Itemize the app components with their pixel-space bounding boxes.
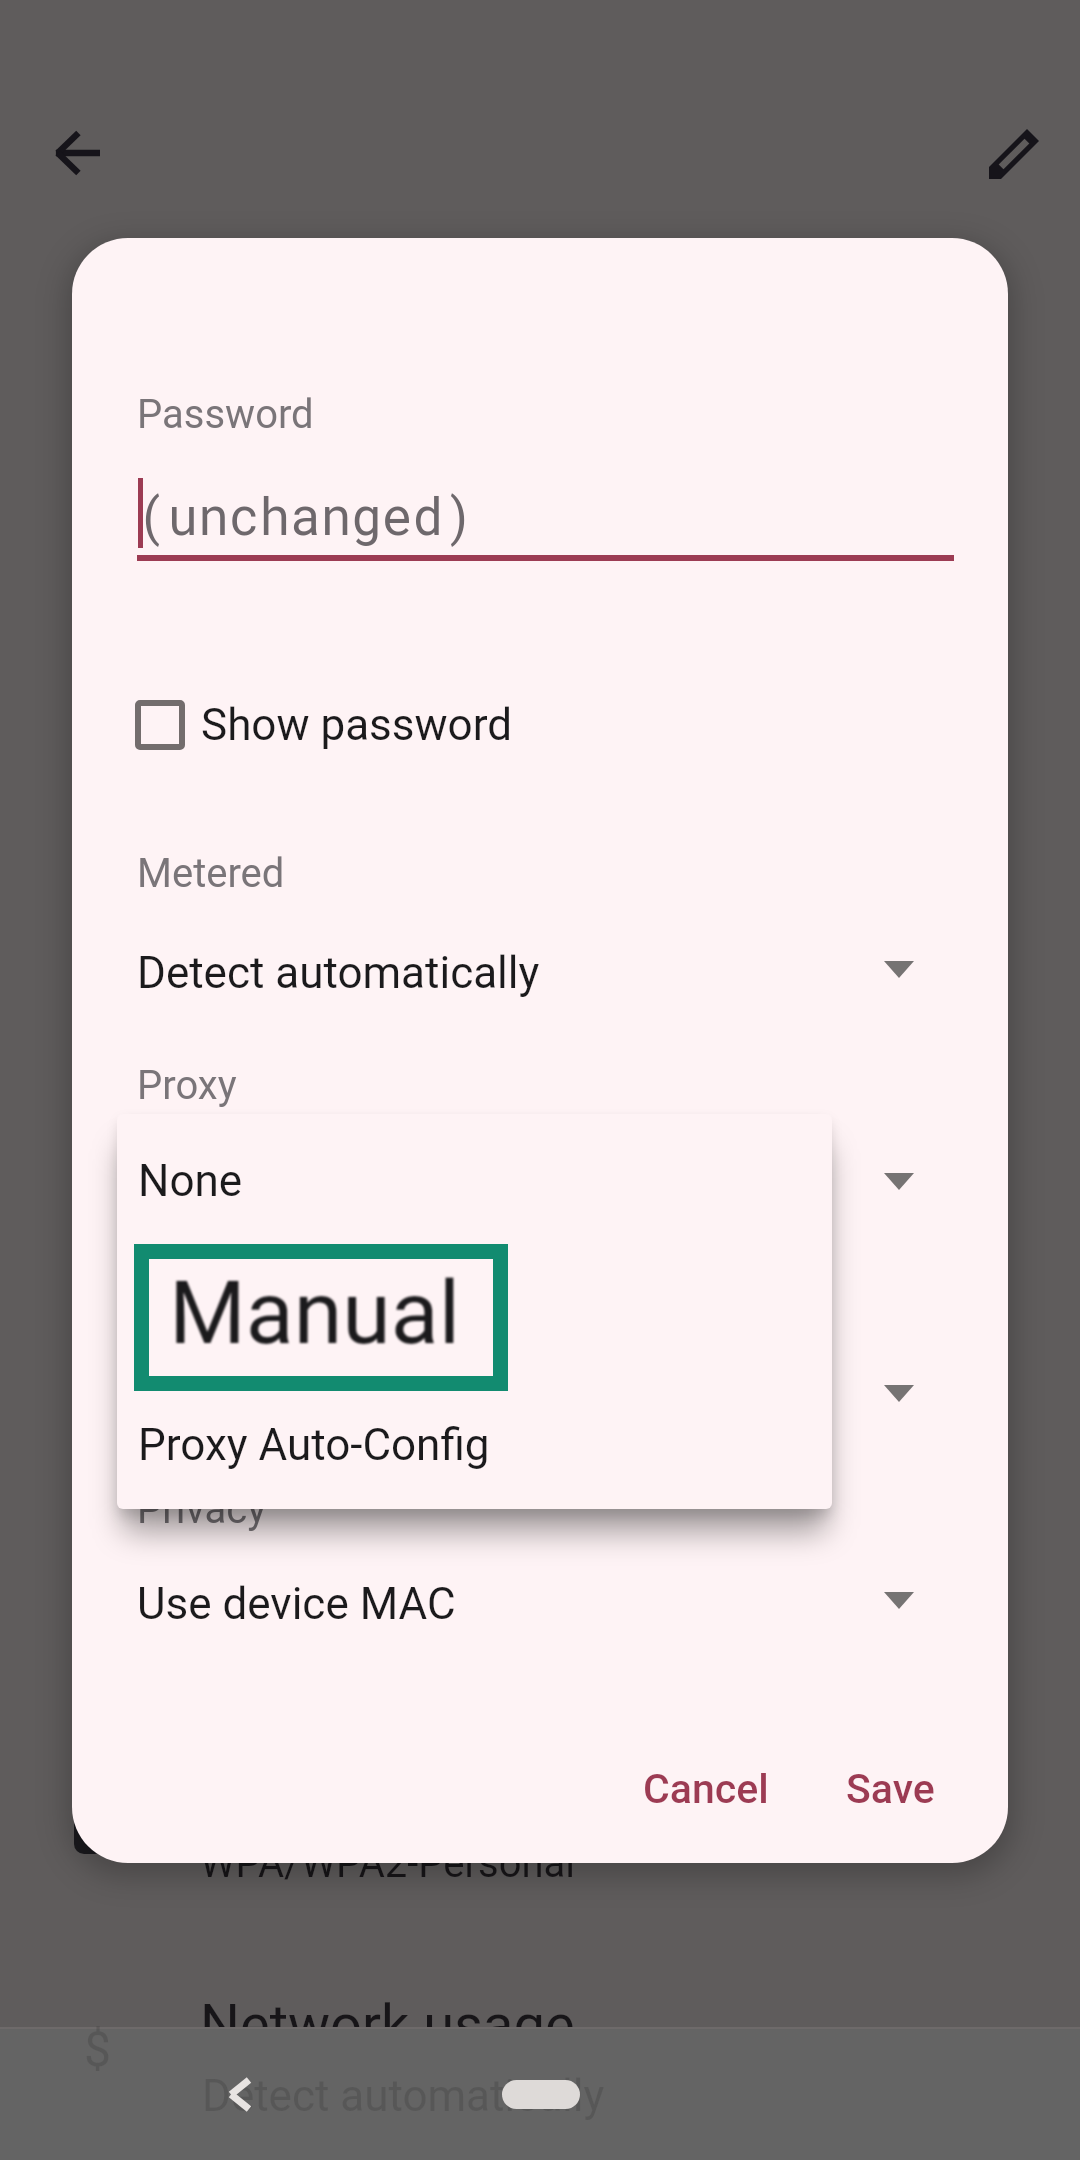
button[interactable]: None [72,1139,1008,1235]
button[interactable]: Detect automatically [72,927,1008,1023]
button[interactable]: Cancel [619,1748,793,1830]
button[interactable]: Manual [117,1236,832,1401]
staticText: Network usage [200,1992,575,2058]
button[interactable]: None [117,1114,832,1236]
button[interactable]: Back [30,106,124,200]
staticText: Detect automatically [202,2070,605,2122]
button[interactable]: Show password [128,682,512,768]
staticText: DHCP [137,1371,254,1423]
staticText: Manual [169,1261,461,1364]
staticText: Metered [137,850,285,897]
button[interactable]: Proxy Auto-Config [117,1401,832,1509]
button[interactable]: DHCP [72,1351,1008,1447]
staticText: WPA/WPA2-Personal [200,1840,576,1887]
staticText: (unchanged) [137,482,474,549]
staticText: Proxy [137,1062,237,1109]
staticText: Proxy Auto-Config [138,1419,490,1471]
button[interactable]: Save [822,1748,959,1830]
staticText: None [138,1155,243,1207]
staticText: Detect automatically [137,947,540,999]
button[interactable]: Use device MAC [72,1558,1008,1654]
staticText: Privacy [137,1486,267,1533]
staticText: Save [846,1765,935,1813]
staticText: Cancel [643,1765,769,1813]
staticText: Use device MAC [137,1578,456,1630]
staticText: IP settings [137,1274,326,1321]
staticText: Show password [201,699,512,751]
button[interactable]: Edit [967,107,1061,201]
staticText: $ [84,2021,111,2077]
staticText: Password [137,391,314,438]
staticText: None [137,1159,242,1211]
